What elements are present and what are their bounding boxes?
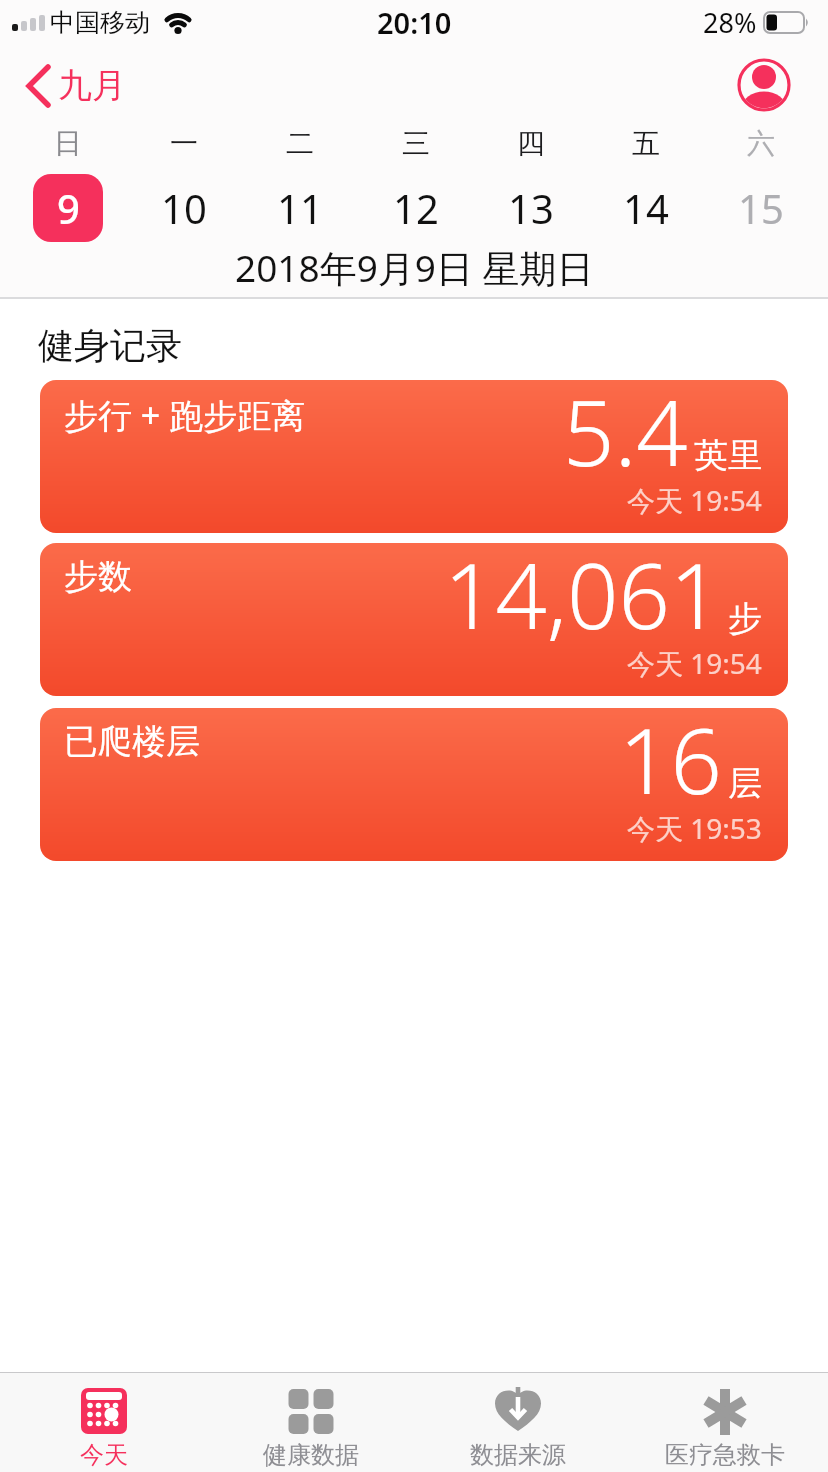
staticText: 六 (747, 126, 775, 160)
staticText: 一 (170, 126, 198, 160)
staticText: 已爬楼层 (64, 720, 200, 763)
staticText: 28% (703, 4, 757, 41)
staticText: 步行 + 跑步距离 (64, 392, 306, 438)
button[interactable]: 步行 + 跑步距离 (40, 380, 788, 533)
staticText: 14,061 (444, 543, 722, 656)
staticText: 二 (286, 126, 314, 160)
button[interactable]: 14 (611, 174, 681, 242)
button[interactable]: 15 (726, 174, 796, 242)
staticText: 今天 19:54 (627, 481, 762, 519)
staticText: 步数 (64, 555, 132, 598)
staticText: 13 (508, 181, 554, 235)
button[interactable]: 已爬楼层 (40, 708, 788, 861)
staticText: 今天 (80, 1440, 128, 1470)
staticText: 健康数据 (263, 1440, 359, 1470)
button[interactable]: 13 (496, 174, 566, 242)
staticText: 11 (277, 181, 323, 235)
staticText: 5.4 (563, 380, 688, 493)
staticText: 20:10 (377, 3, 452, 42)
staticText: 五 (632, 126, 660, 160)
button[interactable]: 9 (33, 174, 103, 242)
staticText: 16 (619, 708, 722, 821)
staticText: 数据来源 (470, 1440, 566, 1470)
button[interactable] (736, 57, 792, 113)
staticText: 中国移动 (50, 7, 150, 38)
staticText: 四 (517, 126, 545, 160)
staticText: 步 (728, 597, 762, 640)
staticText: 三 (402, 126, 430, 160)
staticText: 健身记录 (38, 323, 182, 368)
button[interactable]: 10 (149, 174, 219, 242)
staticText: 12 (393, 181, 439, 235)
button[interactable]: 数据来源 (414, 1373, 621, 1472)
staticText: 医疗急救卡 (665, 1440, 785, 1470)
button[interactable]: 今天 (0, 1373, 207, 1472)
staticText: 15 (738, 181, 784, 235)
button[interactable]: 健康数据 (207, 1373, 414, 1472)
button[interactable]: 医疗急救卡 (621, 1373, 828, 1472)
staticText: 九月 (58, 64, 126, 107)
button[interactable]: 12 (381, 174, 451, 242)
button[interactable]: 11 (265, 174, 335, 242)
staticText: 层 (728, 762, 762, 805)
staticText: 今天 19:53 (627, 809, 762, 847)
staticText: 9 (57, 181, 80, 235)
staticText: 今天 19:54 (627, 644, 762, 682)
staticText: 14 (623, 181, 669, 235)
staticText: 2018年9月9日 星期日 (235, 242, 594, 293)
button[interactable]: 九月 (26, 64, 126, 107)
staticText: 英里 (694, 434, 762, 477)
staticText: 日 (54, 126, 82, 160)
button[interactable]: 步数 (40, 543, 788, 696)
staticText: 10 (161, 181, 207, 235)
